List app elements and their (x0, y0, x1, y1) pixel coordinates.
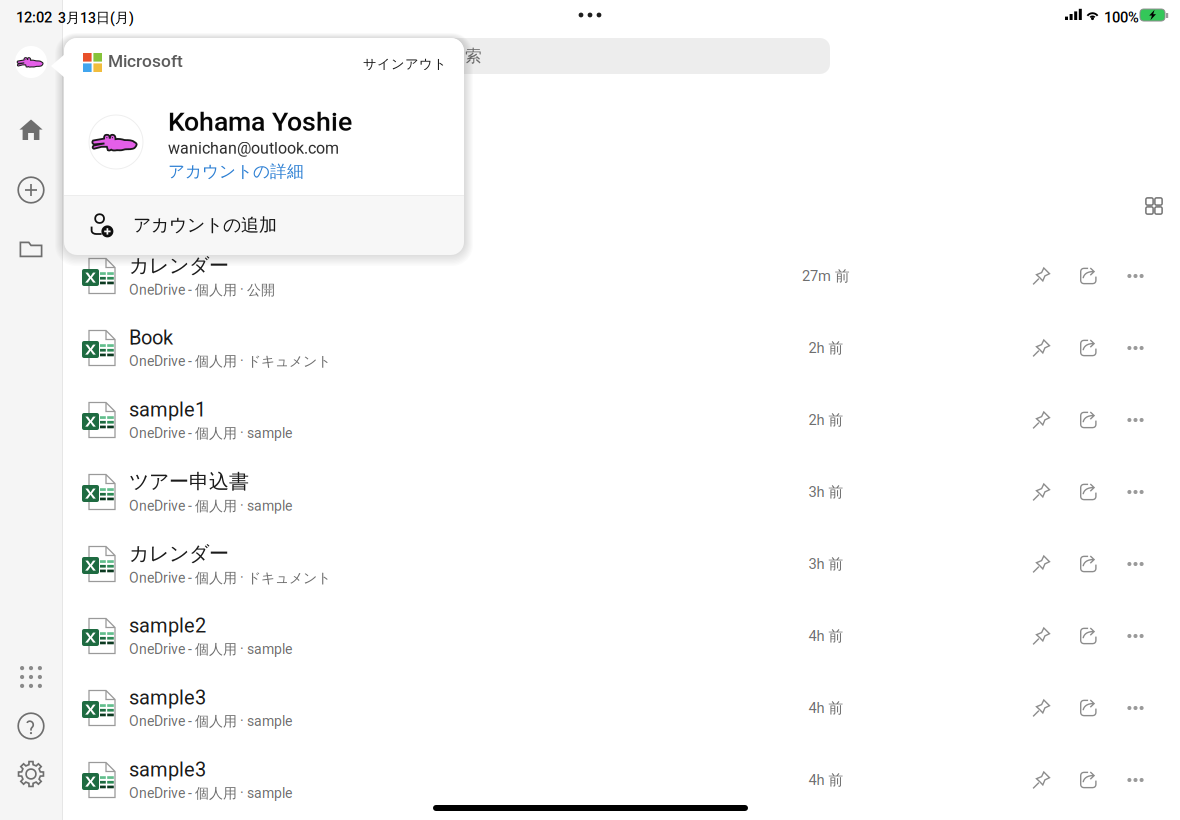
staticText: Book (129, 326, 173, 349)
staticText: 4h 前 (808, 771, 843, 789)
button[interactable]: More (1112, 612, 1159, 659)
button[interactable]: Share (1065, 252, 1112, 299)
staticText: OneDrive - 個人用 · ドキュメント (129, 352, 331, 370)
button[interactable]: Account (11, 46, 51, 78)
button[interactable]: New (11, 176, 51, 204)
staticText: OneDrive - 個人用 · sample (129, 424, 292, 442)
button[interactable]: Pin (1018, 324, 1065, 371)
button[interactable]: Book (62, 312, 1180, 384)
staticText: ツアー申込書 (129, 469, 249, 494)
button[interactable]: More (1112, 684, 1159, 731)
staticText: 12:02 (16, 9, 52, 26)
button[interactable]: サインアウト (334, 54, 447, 74)
staticText: OneDrive - 個人用 · sample (129, 784, 292, 802)
button[interactable]: More (1112, 324, 1159, 371)
button[interactable]: Share (1065, 324, 1112, 371)
button[interactable]: Open (11, 235, 51, 263)
button[interactable]: Help (11, 712, 51, 740)
staticText: sample2 (129, 614, 206, 637)
button[interactable]: Pin (1018, 540, 1065, 587)
button[interactable]: More (1112, 756, 1159, 803)
staticText: アカウントの追加 (133, 214, 277, 236)
staticText: 4h 前 (808, 627, 843, 645)
button[interactable]: sample1 (62, 384, 1180, 456)
staticText: カレンダー (129, 541, 229, 566)
staticText: Kohama Yoshie (168, 106, 352, 137)
button[interactable]: Share (1065, 756, 1112, 803)
button[interactable]: Pin (1018, 612, 1065, 659)
button[interactable]: アカウントの詳細 (168, 162, 304, 181)
staticText: sample1 (129, 398, 206, 421)
button[interactable]: Share (1065, 540, 1112, 587)
button[interactable]: Share (1065, 468, 1112, 515)
staticText: OneDrive - 個人用 · sample (129, 712, 292, 730)
button[interactable]: Pin (1018, 396, 1065, 443)
button[interactable]: Settings (11, 760, 51, 788)
button[interactable]: More (1112, 252, 1159, 299)
button[interactable]: More (1112, 540, 1159, 587)
staticText: カレンダー (129, 253, 229, 278)
staticText: wanichan@outlook.com (168, 139, 339, 158)
staticText: 3h 前 (808, 555, 843, 573)
button[interactable]: sample2 (62, 600, 1180, 672)
staticText: 2h 前 (808, 339, 843, 357)
button[interactable]: Home (11, 116, 51, 144)
staticText: 100% (1104, 9, 1139, 26)
button[interactable]: sample3 (62, 672, 1180, 744)
staticText: OneDrive - 個人用 · sample (129, 497, 292, 515)
button[interactable]: Share (1065, 684, 1112, 731)
staticText: 検索 (448, 45, 482, 66)
button[interactable]: Pin (1018, 252, 1065, 299)
staticText: 4h 前 (808, 699, 843, 717)
button[interactable]: Pin (1018, 756, 1065, 803)
button[interactable]: More (1112, 396, 1159, 443)
staticText: OneDrive - 個人用 · 公開 (129, 281, 275, 299)
button[interactable]: Pin (1018, 468, 1065, 515)
staticText: アカウントの詳細 (168, 161, 304, 182)
staticText: 27m 前 (802, 267, 850, 285)
staticText: サインアウト (363, 56, 447, 72)
button[interactable]: Apps (11, 666, 51, 688)
button[interactable]: Share (1065, 612, 1112, 659)
button[interactable]: アカウントの追加 (64, 195, 464, 255)
staticText: OneDrive - 個人用 · sample (129, 640, 292, 658)
button[interactable]: カレンダー (62, 528, 1180, 600)
button[interactable]: ツアー申込書 (62, 456, 1180, 528)
button[interactable]: Switch layout (1136, 188, 1172, 224)
button[interactable]: Pin (1018, 684, 1065, 731)
staticText: sample3 (129, 758, 206, 781)
button[interactable]: sample3 (62, 744, 1180, 816)
button[interactable]: More (1112, 468, 1159, 515)
staticText: 2h 前 (808, 411, 843, 429)
staticText: Microsoft (108, 51, 183, 71)
button[interactable]: カレンダー (62, 240, 1180, 312)
staticText: OneDrive - 個人用 · ドキュメント (129, 569, 331, 587)
staticText: 3h 前 (808, 483, 843, 501)
staticText: sample3 (129, 686, 206, 709)
button[interactable]: Share (1065, 396, 1112, 443)
staticText: 3月13日(月) (58, 9, 134, 27)
